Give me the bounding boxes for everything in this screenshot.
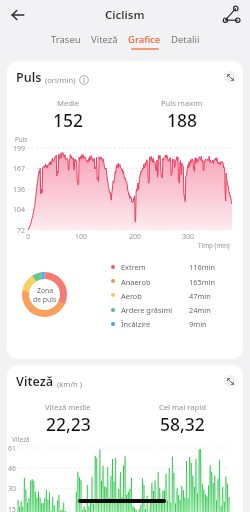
staticText: Traseu	[51, 33, 81, 46]
button[interactable]: Grafice	[128, 33, 161, 50]
staticText: 61	[7, 444, 16, 454]
button[interactable]: Traseu	[51, 33, 81, 46]
staticText: de puls	[33, 295, 57, 304]
staticText: Încălzire	[121, 319, 151, 329]
button[interactable]: Share	[221, 5, 241, 25]
staticText: Timp (min)	[198, 241, 230, 250]
staticText: 104	[7, 205, 25, 215]
staticText: 0	[16, 232, 40, 242]
staticText: Extrem	[121, 262, 146, 272]
staticText: 167	[7, 164, 25, 174]
staticText: Ciclism	[105, 7, 145, 23]
staticText: Puls	[15, 135, 28, 144]
staticText: 300	[176, 232, 200, 242]
staticText: 15	[7, 505, 16, 512]
staticText: Viteză	[12, 435, 30, 444]
staticText: Medie	[57, 98, 80, 108]
staticText: Puls maxim	[161, 98, 203, 108]
staticText: 24min	[189, 305, 211, 315]
staticText: 9min	[189, 319, 207, 329]
staticText: 100	[69, 232, 93, 242]
staticText: Viteză	[16, 373, 54, 390]
staticText: Detalii	[171, 33, 200, 46]
staticText: 188	[167, 108, 198, 132]
staticText: 46	[7, 464, 16, 474]
staticText: Viteză	[91, 33, 118, 46]
staticText: 136	[7, 185, 25, 195]
staticText: 200	[123, 232, 147, 242]
button[interactable]: Expand chart	[224, 71, 236, 83]
staticText: 47min	[189, 291, 211, 301]
staticText: Anaerob	[121, 277, 151, 287]
staticText: 72	[7, 226, 25, 236]
staticText: Aerob	[121, 291, 142, 301]
staticText: 30	[7, 484, 16, 494]
staticText: Puls	[16, 69, 42, 86]
staticText: 22,23	[46, 412, 91, 436]
staticText: 199	[7, 144, 25, 154]
staticText: (km/h )	[57, 379, 82, 389]
staticText: 58,32	[160, 412, 205, 436]
staticText: 116min	[189, 262, 216, 272]
staticText: Ardere grăsimi	[121, 305, 173, 315]
button[interactable]: Viteză	[91, 33, 118, 46]
staticText: (ori/min)	[45, 75, 76, 85]
staticText: Zona	[37, 286, 54, 295]
button[interactable]: Expand chart	[224, 375, 236, 387]
staticText: 152	[53, 108, 84, 132]
button[interactable]: Back	[6, 3, 30, 27]
staticText: Viteză medie	[45, 402, 91, 412]
button[interactable]: Detalii	[171, 33, 200, 46]
staticText: 165min	[189, 277, 216, 287]
staticText: Grafice	[128, 33, 161, 46]
staticText: Cel mai rapid	[159, 402, 206, 412]
